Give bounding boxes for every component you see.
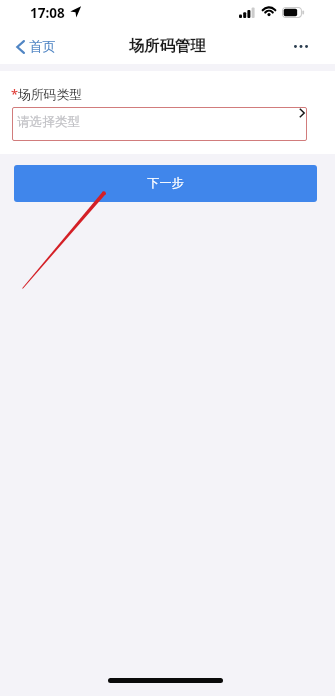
staticText: 场所码管理	[129, 36, 206, 55]
staticText: 首页	[29, 38, 56, 55]
staticText: 17:08	[30, 4, 65, 22]
button[interactable]: More options	[285, 34, 317, 59]
staticText: 下一步	[147, 175, 184, 190]
button[interactable]: 下一步	[14, 165, 317, 202]
button[interactable]: 首页	[0, 33, 66, 60]
button[interactable]: 请选择类型	[12, 107, 307, 141]
staticText: 请选择类型	[17, 114, 80, 130]
staticText: *场所码类型	[11, 85, 82, 102]
